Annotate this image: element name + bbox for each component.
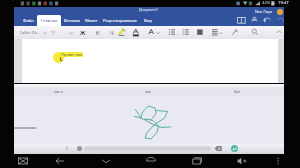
button[interactable]: Файл <box>20 15 37 26</box>
button[interactable]: Back <box>54 155 66 167</box>
staticText: Моя Лада <box>255 9 273 14</box>
button[interactable]: Collapse ribbon <box>275 28 284 37</box>
staticText: Ж <box>80 29 86 36</box>
button[interactable]: Redo <box>276 16 285 25</box>
button[interactable]: Find <box>251 28 260 37</box>
button[interactable]: Calibri (Os... <box>18 28 39 37</box>
staticText: Главная <box>41 18 58 24</box>
button[interactable]: Ж <box>78 28 87 37</box>
button[interactable]: Font colour <box>132 28 141 37</box>
button[interactable]: Paragraph spacing <box>211 28 220 37</box>
staticText: Calibri (Os... <box>20 30 41 35</box>
staticText: Макет <box>85 18 98 24</box>
button[interactable]: List style <box>182 28 191 37</box>
button[interactable]: Format painter <box>231 28 240 37</box>
button[interactable]: Enter <box>231 145 238 152</box>
button[interactable]: Hide keyboard <box>100 155 112 167</box>
button[interactable]: Share <box>250 16 259 25</box>
button[interactable]: Макет <box>83 15 99 26</box>
button[interactable]: Menu <box>272 155 284 167</box>
button[interactable]: К <box>93 28 102 37</box>
button[interactable]: Recents <box>191 155 203 167</box>
button[interactable]: Вид <box>142 15 154 26</box>
staticText: Вид <box>144 18 152 24</box>
button[interactable]: Account <box>277 9 283 15</box>
staticText: Вставка <box>64 18 80 24</box>
button[interactable]: Text styles <box>148 28 157 37</box>
button[interactable]: Multilevel list <box>196 28 205 37</box>
button[interactable]: Highlight <box>118 28 127 37</box>
button[interactable]: Home <box>145 155 157 167</box>
staticText: Привет как <box>61 52 82 57</box>
button[interactable]: Volume up <box>236 155 248 167</box>
staticText: как <box>145 89 151 94</box>
button[interactable]: Ч <box>107 28 116 37</box>
button[interactable]: Screenshot <box>17 155 29 167</box>
staticText: К <box>96 29 100 36</box>
button[interactable]: 11 <box>49 28 54 37</box>
button[interactable]: List style <box>168 28 177 37</box>
staticText: Ч <box>110 29 114 36</box>
button[interactable]: Undo <box>263 16 272 25</box>
staticText: Файл <box>23 18 34 24</box>
staticText: 11 <box>51 30 56 35</box>
staticText: Рецензирование <box>103 18 138 24</box>
button[interactable]: как я <box>51 87 60 95</box>
button[interactable]: Рецензирование <box>101 15 139 26</box>
button[interactable]: Главная <box>37 15 61 26</box>
staticText: Документ1 <box>139 7 159 12</box>
staticText: как я <box>54 89 63 94</box>
button[interactable]: Read layout <box>237 16 246 25</box>
staticText: Как <box>234 89 241 94</box>
button[interactable]: Как <box>231 87 238 95</box>
staticText: 42% <box>262 0 271 6</box>
button[interactable]: Вставка <box>62 15 82 26</box>
staticText: 19:47 <box>278 0 289 6</box>
button[interactable]: как <box>142 87 148 95</box>
